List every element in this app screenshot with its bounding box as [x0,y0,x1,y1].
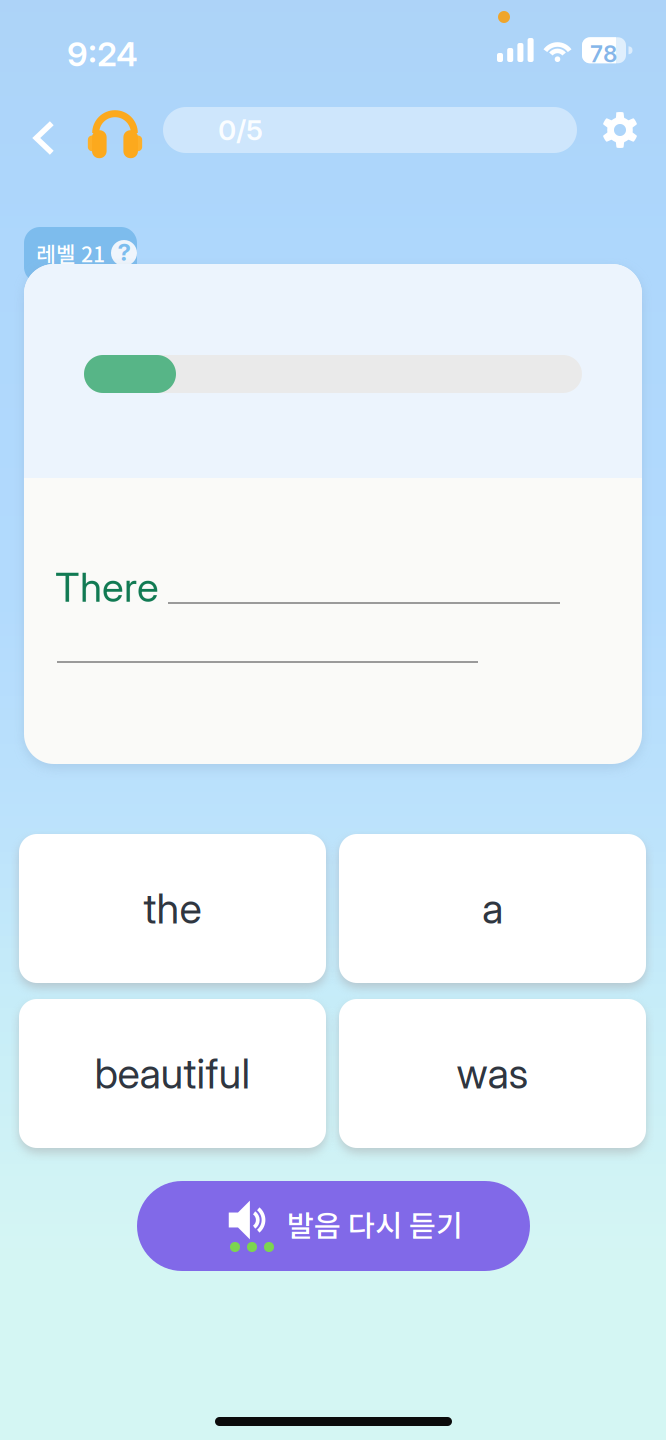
staticText: 78 [590,40,617,68]
staticText: 0/5 [218,113,263,147]
staticText: a [482,883,503,933]
button[interactable]: Back [17,108,71,168]
staticText: ? [117,237,130,266]
button[interactable]: 0/5 [163,107,577,153]
staticText: the [143,883,201,933]
staticText: There [55,563,159,611]
button[interactable]: beautiful [19,999,326,1148]
button[interactable]: the [19,834,326,983]
staticText: 발음 다시 듣기 [287,1203,463,1245]
staticText: 9:24 [67,34,138,74]
button[interactable]: a [339,834,646,983]
staticText: was [456,1048,528,1098]
button[interactable]: Settings [592,101,648,159]
button[interactable]: 발음 다시 듣기 [137,1181,530,1271]
staticText: 레벨 21 [36,238,105,268]
button[interactable]: 레벨 21 [24,227,137,283]
button[interactable]: was [339,999,646,1148]
staticText: beautiful [94,1048,250,1098]
